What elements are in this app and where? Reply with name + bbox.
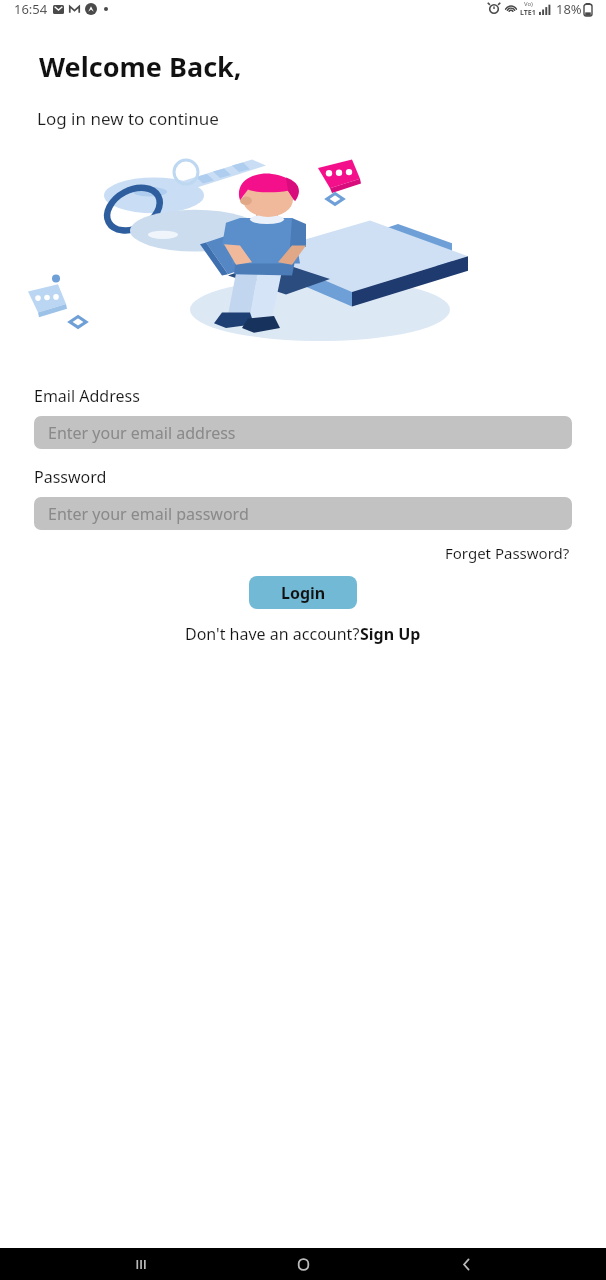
staticText: Vo) [524,0,533,8]
staticText: Password [34,466,107,488]
button[interactable]: Back [444,1248,488,1280]
staticText: 18% [556,0,582,18]
button[interactable]: Login [249,576,357,609]
staticText: LTE1 [520,8,536,18]
button[interactable]: Enter your email password [34,497,572,530]
staticText: 16:54 [14,0,48,18]
staticText: Email Address [34,385,140,407]
button[interactable]: Forget Password? [443,541,572,565]
button[interactable]: Recent apps [119,1248,163,1280]
button[interactable]: Enter your email address [34,416,572,449]
staticText: Enter your email address [48,422,236,444]
button[interactable]: Sign Up [360,623,421,645]
staticText: Login [281,582,326,604]
button[interactable]: Home [281,1248,325,1280]
staticText: Sign Up [360,623,421,645]
staticText: Don't have an account? [185,623,360,645]
staticText: Welcome Back, [39,48,242,85]
staticText: Enter your email password [48,503,249,525]
staticText: Log in new to continue [37,107,219,130]
staticText: Forget Password? [445,543,570,563]
